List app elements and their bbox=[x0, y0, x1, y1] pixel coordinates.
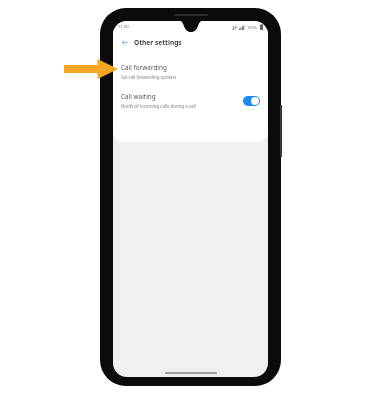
staticText: Notify of incoming calls during a call bbox=[121, 103, 196, 109]
staticText: 11:00 bbox=[118, 24, 129, 30]
staticText: 100% bbox=[247, 25, 258, 30]
button[interactable]: Back bbox=[118, 36, 130, 48]
other: Pointer to Call forwarding bbox=[64, 59, 118, 79]
button[interactable]: Call waiting bbox=[113, 91, 268, 112]
button[interactable]: Call waiting toggle, on bbox=[241, 94, 261, 107]
staticText: Set call forwarding options bbox=[121, 74, 177, 80]
button[interactable]: Call forwarding bbox=[113, 61, 268, 83]
staticText: Call forwarding bbox=[121, 63, 167, 72]
staticText: Call waiting bbox=[121, 92, 156, 101]
staticText: Other settings bbox=[134, 38, 182, 47]
